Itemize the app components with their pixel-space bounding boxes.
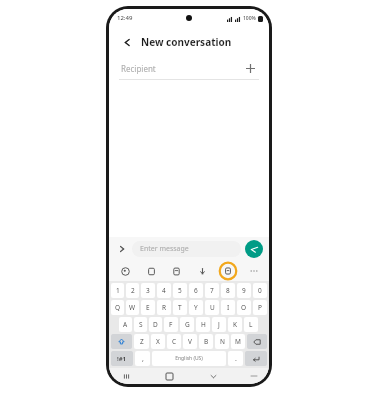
button[interactable]: Recipient <box>109 57 269 79</box>
button[interactable]: More options <box>247 264 261 278</box>
button[interactable]: Hide keyboard <box>206 369 220 383</box>
staticText: Y <box>194 303 198 312</box>
staticText: O <box>241 303 247 312</box>
staticText: New conversation <box>141 35 232 49</box>
button[interactable]: , <box>135 351 150 366</box>
staticText: Recipient <box>121 63 156 74</box>
button[interactable]: 9 <box>237 283 251 298</box>
button[interactable]: Enter message <box>132 241 241 257</box>
button[interactable]: I <box>221 300 235 315</box>
staticText: F <box>169 320 173 329</box>
staticText: 4 <box>162 286 166 295</box>
button[interactable]: K <box>228 317 242 332</box>
button[interactable]: F <box>164 317 178 332</box>
button[interactable]: !#1 <box>111 351 133 366</box>
staticText: N <box>220 337 225 346</box>
staticText: T <box>178 303 182 312</box>
button[interactable]: Voice <box>194 263 210 279</box>
button[interactable]: Recents <box>119 369 133 383</box>
staticText: 1 <box>116 286 120 295</box>
button[interactable]: E <box>141 300 155 315</box>
staticText: C <box>172 337 177 346</box>
button[interactable]: 2 <box>126 283 139 298</box>
button[interactable]: English (US) <box>152 351 226 366</box>
button[interactable]: B <box>199 334 213 349</box>
staticText: 5 <box>178 286 182 295</box>
button[interactable]: Shift <box>111 334 132 349</box>
button[interactable]: O <box>237 300 251 315</box>
button[interactable]: V <box>183 334 197 349</box>
button[interactable]: X <box>151 334 165 349</box>
button[interactable]: Z <box>134 334 149 349</box>
staticText: 9 <box>242 286 246 295</box>
button[interactable]: Camera <box>168 263 184 279</box>
button[interactable]: U <box>205 300 219 315</box>
button[interactable]: Expand <box>115 242 129 256</box>
button[interactable]: 6 <box>189 283 203 298</box>
staticText: H <box>201 320 206 329</box>
button[interactable]: Y <box>189 300 203 315</box>
staticText: 12:49 <box>117 14 133 22</box>
staticText: 6 <box>194 286 198 295</box>
button[interactable]: 3 <box>141 283 155 298</box>
button[interactable]: R <box>157 300 171 315</box>
staticText: P <box>258 303 262 312</box>
button[interactable]: . <box>228 351 243 366</box>
staticText: E <box>146 303 150 312</box>
staticText: R <box>162 303 167 312</box>
button[interactable]: Stickers <box>117 263 133 279</box>
staticText: B <box>204 337 209 346</box>
button[interactable]: 5 <box>173 283 187 298</box>
button[interactable]: W <box>126 300 139 315</box>
button[interactable]: Q <box>111 300 124 315</box>
staticText: 7 <box>210 286 214 295</box>
button[interactable]: Enter <box>245 351 267 366</box>
button[interactable]: D <box>149 317 162 332</box>
button[interactable]: 1 <box>111 283 124 298</box>
button[interactable]: Other apps <box>219 262 237 280</box>
staticText: L <box>249 320 253 329</box>
button[interactable]: Add recipient <box>243 61 257 75</box>
staticText: 100% <box>243 15 256 22</box>
staticText: J <box>218 320 220 329</box>
staticText: 3 <box>146 286 150 295</box>
button[interactable]: 7 <box>205 283 219 298</box>
button[interactable]: 4 <box>157 283 171 298</box>
staticText: Q <box>115 303 121 312</box>
staticText: Enter message <box>140 244 189 254</box>
staticText: 2 <box>131 286 135 295</box>
button[interactable]: N <box>215 334 229 349</box>
button[interactable]: P <box>253 300 267 315</box>
button[interactable]: 8 <box>221 283 235 298</box>
button[interactable]: 0 <box>253 283 267 298</box>
button[interactable]: H <box>196 317 210 332</box>
button[interactable]: Back <box>119 34 135 50</box>
staticText: K <box>233 320 238 329</box>
staticText: M <box>235 337 241 346</box>
button[interactable]: Backspace <box>247 334 267 349</box>
button[interactable]: M <box>231 334 245 349</box>
staticText: I <box>227 303 230 312</box>
button[interactable]: Keyboard options <box>249 371 259 381</box>
button[interactable]: A <box>119 317 132 332</box>
staticText: G <box>185 320 190 329</box>
staticText: !#1 <box>117 355 127 363</box>
button[interactable]: L <box>244 317 258 332</box>
staticText: D <box>153 320 158 329</box>
button[interactable]: T <box>173 300 187 315</box>
staticText: 8 <box>226 286 230 295</box>
button[interactable]: C <box>167 334 181 349</box>
staticText: S <box>139 320 143 329</box>
button[interactable]: Home <box>162 369 176 383</box>
button[interactable]: S <box>134 317 147 332</box>
button[interactable]: Send <box>245 240 263 258</box>
staticText: A <box>123 320 128 329</box>
button[interactable]: J <box>212 317 226 332</box>
button[interactable]: Gallery <box>143 263 159 279</box>
staticText: X <box>156 337 160 346</box>
staticText: English (US) <box>175 355 203 362</box>
staticText: Z <box>140 337 144 346</box>
staticText: . <box>235 354 237 364</box>
staticText: V <box>188 337 192 346</box>
button[interactable]: G <box>180 317 194 332</box>
